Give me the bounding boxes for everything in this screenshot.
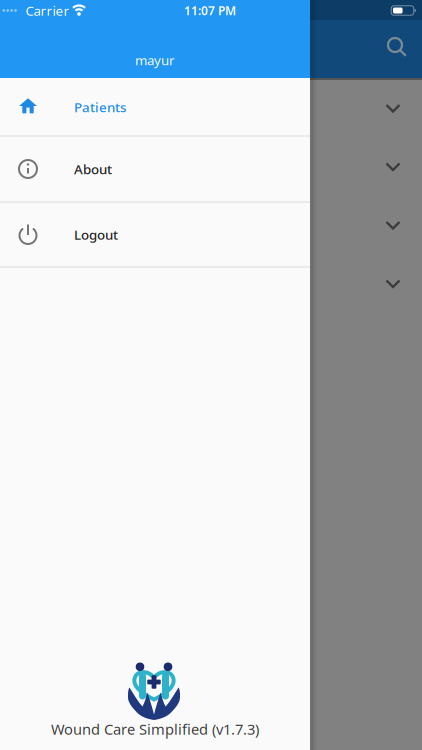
staticText: mayur bbox=[135, 51, 175, 69]
staticText: About bbox=[74, 160, 112, 178]
staticText: Wound Care Simplified (v1.7.3) bbox=[51, 719, 259, 739]
staticText: Logout bbox=[74, 226, 118, 243]
button[interactable]: Close menu bbox=[310, 0, 422, 750]
staticText: Patients bbox=[74, 98, 126, 116]
button[interactable]: Patients bbox=[0, 78, 310, 136]
staticText: Carrier bbox=[25, 2, 69, 19]
button[interactable]: Logout bbox=[0, 202, 310, 267]
staticText: 11:07 PM bbox=[184, 2, 236, 18]
button[interactable]: About bbox=[0, 136, 310, 202]
button[interactable]: Search bbox=[376, 26, 420, 70]
